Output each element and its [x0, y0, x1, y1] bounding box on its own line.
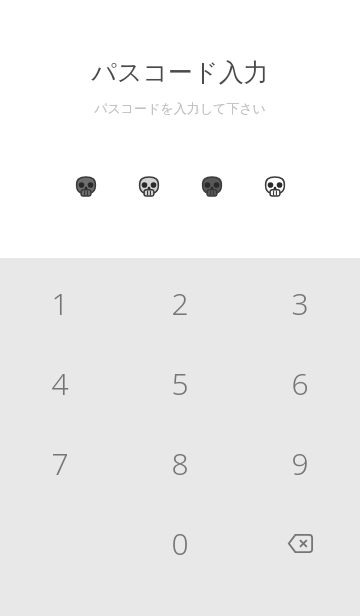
staticText: 3: [291, 283, 309, 324]
button[interactable]: 8: [120, 423, 240, 503]
staticText: 1: [51, 283, 69, 324]
button[interactable]: 0: [120, 503, 240, 583]
staticText: 4: [51, 363, 69, 404]
button[interactable]: 2: [120, 263, 240, 343]
button[interactable]: 4: [0, 343, 120, 423]
button[interactable]: 3: [240, 263, 360, 343]
staticText: 9: [291, 443, 309, 484]
button[interactable]: 5: [120, 343, 240, 423]
staticText: 6: [291, 363, 309, 404]
staticText: 5: [171, 363, 189, 404]
staticText: パスコードを入力して下さい: [94, 100, 266, 116]
button[interactable]: 7: [0, 423, 120, 503]
staticText: 2: [171, 283, 189, 324]
button[interactable]: 6: [240, 343, 360, 423]
button[interactable]: Backspace: [240, 503, 360, 583]
button[interactable]: 1: [0, 263, 120, 343]
button[interactable]: 9: [240, 423, 360, 503]
staticText: パスコード入力: [91, 57, 269, 88]
staticText: 7: [51, 443, 69, 484]
staticText: 8: [171, 443, 189, 484]
staticText: 0: [171, 523, 189, 564]
